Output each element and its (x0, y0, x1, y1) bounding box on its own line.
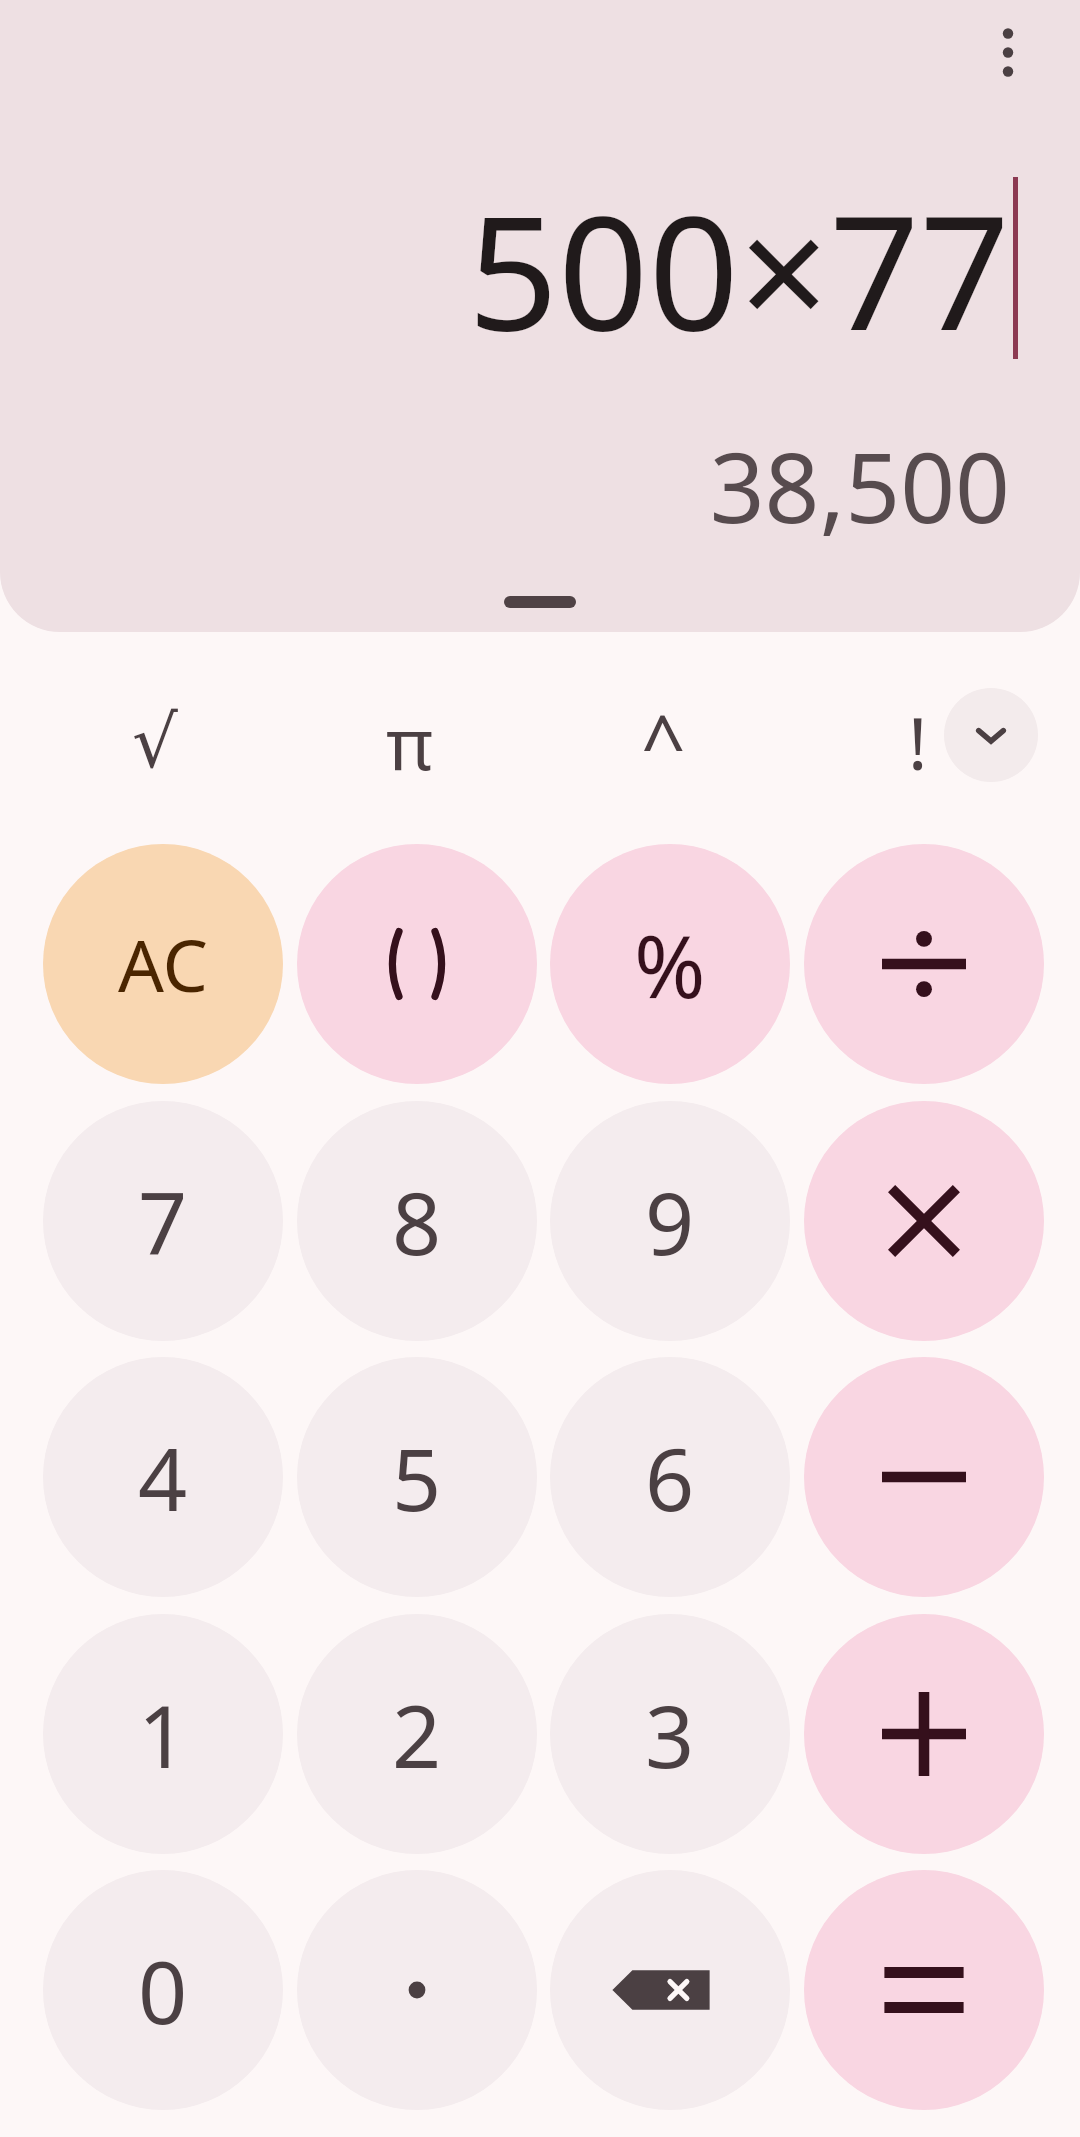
button[interactable]: 9 (550, 1101, 790, 1341)
staticText: 8 (392, 1163, 442, 1280)
button[interactable]: 1 (43, 1614, 283, 1854)
button[interactable]: ^ (591, 670, 735, 814)
button[interactable]: % (550, 844, 790, 1084)
button[interactable] (504, 596, 576, 608)
button[interactable] (804, 1101, 1044, 1341)
staticText: ! (908, 693, 928, 791)
staticText: 0 (138, 1932, 188, 2049)
staticText: √ (132, 700, 178, 784)
button[interactable]: √ (83, 670, 227, 814)
button[interactable] (804, 1357, 1044, 1597)
button[interactable] (804, 1614, 1044, 1854)
staticText: 1 (138, 1676, 188, 1793)
staticText: AC (118, 915, 209, 1013)
staticText: 6 (645, 1419, 695, 1536)
button[interactable] (804, 844, 1044, 1084)
button[interactable]: 7 (43, 1101, 283, 1341)
staticText: % (634, 906, 706, 1023)
staticText: 500×77 (467, 161, 1010, 376)
button[interactable] (297, 844, 537, 1084)
staticText: 3 (645, 1676, 695, 1793)
button[interactable]: 8 (297, 1101, 537, 1341)
button[interactable]: 6 (550, 1357, 790, 1597)
staticText: 38,500 (709, 420, 1010, 551)
button[interactable]: 2 (297, 1614, 537, 1854)
button[interactable]: More options (958, 14, 1058, 114)
button[interactable]: 0 (43, 1870, 283, 2110)
staticText: 4 (138, 1419, 188, 1536)
staticText: 9 (645, 1163, 695, 1280)
button[interactable]: π (338, 670, 482, 814)
staticText: π (386, 693, 434, 791)
staticText: 2 (392, 1676, 442, 1793)
button[interactable]: ! (846, 670, 990, 814)
button[interactable]: AC (43, 844, 283, 1084)
button[interactable] (804, 1870, 1044, 2110)
staticText: 7 (138, 1163, 188, 1280)
button[interactable]: Backspace (550, 1870, 790, 2110)
button[interactable]: Expand functions (944, 688, 1038, 782)
staticText: 5 (392, 1419, 442, 1536)
button[interactable]: 4 (43, 1357, 283, 1597)
button[interactable] (297, 1870, 537, 2110)
staticText: ^ (641, 689, 686, 795)
button[interactable]: 3 (550, 1614, 790, 1854)
button[interactable]: 5 (297, 1357, 537, 1597)
